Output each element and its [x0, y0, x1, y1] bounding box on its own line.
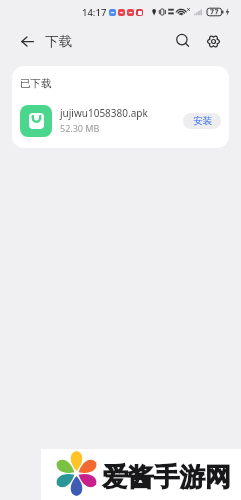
staticText: 爱酱手游网	[102, 461, 231, 494]
staticText: 14:17	[82, 6, 107, 19]
staticText: 52.30 MB	[60, 122, 100, 134]
staticText: jujiwu1058380.apk	[60, 106, 148, 120]
button[interactable]: Settings	[200, 28, 226, 54]
button[interactable]: 安装	[183, 113, 221, 129]
staticText: 已下载	[20, 77, 52, 90]
button[interactable]: Back	[14, 28, 40, 54]
staticText: 安装	[193, 115, 212, 127]
button[interactable]: Search	[170, 28, 196, 54]
button[interactable]: jujiwu1058380.apk	[12, 99, 229, 143]
staticText: 下载	[45, 33, 72, 50]
